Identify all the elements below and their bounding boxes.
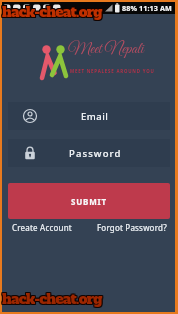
staticText: hack-cheat.org	[3, 289, 103, 308]
staticText: 88% 11:13 AM	[122, 3, 172, 13]
button[interactable]: Email	[8, 102, 170, 130]
staticText: SUBMIT	[71, 196, 107, 207]
button[interactable]: Password	[8, 139, 170, 167]
staticText: MEET NEPALESE AROUND YOU	[70, 68, 155, 74]
staticText: hack-cheat.org	[1, 288, 101, 307]
staticText: hack-cheat.org	[3, 2, 103, 21]
staticText: hack-cheat.org	[2, 290, 102, 309]
staticText: hack-cheat.org	[2, 1, 102, 20]
staticText: hack-cheat.org	[1, 1, 101, 20]
button[interactable]: SUBMIT	[8, 183, 170, 219]
staticText: Password	[69, 147, 122, 160]
staticText: hack-cheat.org	[2, 289, 102, 308]
staticText: hack-cheat.org	[3, 1, 103, 20]
staticText: hack-cheat.org	[2, 3, 102, 22]
button[interactable]: Forgot Password?	[97, 222, 167, 233]
staticText: hack-cheat.org	[2, 2, 102, 21]
staticText: hack-cheat.org	[2, 288, 102, 307]
staticText: hack-cheat.org	[1, 2, 101, 21]
staticText: hack-cheat.org	[3, 290, 103, 309]
button[interactable]: Create Account	[12, 222, 72, 233]
staticText: Email	[81, 110, 109, 123]
staticText: hack-cheat.org	[1, 3, 101, 22]
staticText: hack-cheat.org	[3, 3, 103, 22]
staticText: hack-cheat.org	[1, 289, 101, 308]
staticText: hack-cheat.org	[3, 288, 103, 307]
staticText: Meet Nepali	[68, 39, 144, 60]
staticText: hack-cheat.org	[1, 290, 101, 309]
